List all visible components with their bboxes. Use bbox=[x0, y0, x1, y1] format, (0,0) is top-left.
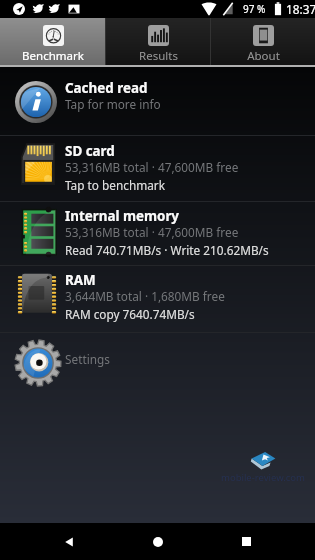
staticText: 97 % bbox=[243, 2, 266, 16]
button[interactable]: Cached read bbox=[0, 67, 315, 135]
button[interactable]: Internal memory bbox=[0, 202, 315, 265]
staticText: RAM copy 7640.74MB/s bbox=[65, 306, 195, 322]
staticText: 3,644MB total · 1,680MB free bbox=[65, 288, 225, 304]
staticText: Internal memory bbox=[65, 207, 180, 225]
staticText: 18:37 bbox=[286, 1, 315, 17]
button[interactable]: About bbox=[211, 18, 315, 65]
staticText: Read 740.71MB/s · Write 210.62MB/s bbox=[65, 242, 269, 258]
staticText: 53,316MB total · 47,600MB free bbox=[65, 224, 239, 240]
staticText: Results bbox=[139, 48, 178, 64]
staticText: Benchmark bbox=[22, 48, 84, 64]
button[interactable]: Settings bbox=[0, 333, 315, 385]
button[interactable]: Recents bbox=[226, 523, 266, 560]
button[interactable]: SD card bbox=[0, 136, 315, 201]
staticText: Tap to benchmark bbox=[65, 177, 165, 193]
staticText: Settings bbox=[65, 351, 110, 367]
staticText: Cached read bbox=[65, 79, 148, 97]
button[interactable]: Results bbox=[106, 18, 210, 65]
staticText: mobile-review.com bbox=[221, 471, 305, 484]
staticText: Tap for more info bbox=[65, 96, 161, 112]
button[interactable]: Home bbox=[138, 523, 178, 560]
staticText: SD card bbox=[65, 142, 115, 160]
button[interactable]: RAM bbox=[0, 266, 315, 332]
button[interactable]: Benchmark bbox=[0, 18, 105, 65]
button[interactable]: Back bbox=[49, 523, 89, 560]
staticText: About bbox=[247, 48, 280, 64]
staticText: RAM bbox=[65, 271, 96, 289]
staticText: 53,316MB total · 47,600MB free bbox=[65, 159, 239, 175]
